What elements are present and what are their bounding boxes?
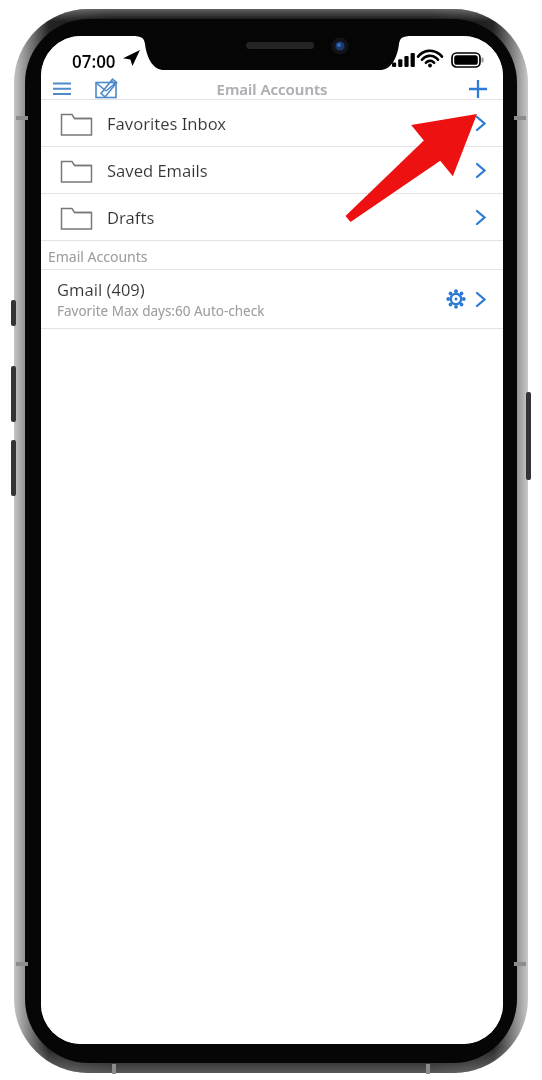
staticText: Drafts xyxy=(107,206,155,228)
staticText: Saved Emails xyxy=(107,159,208,181)
staticText: 07:00 xyxy=(72,50,116,73)
staticText: Favorites Inbox xyxy=(107,112,227,134)
button[interactable]: Drafts xyxy=(41,194,503,240)
button[interactable]: Compose xyxy=(93,76,123,97)
staticText: Email Accounts xyxy=(48,247,148,266)
staticText: Email Accounts xyxy=(41,79,503,99)
button[interactable]: Saved Emails xyxy=(41,147,503,193)
button[interactable]: Menu xyxy=(50,78,78,99)
staticText: Gmail (409) xyxy=(57,278,145,300)
button[interactable]: Favorites Inbox xyxy=(41,100,503,146)
button[interactable]: Add account xyxy=(466,77,490,98)
button[interactable]: Gmail (409) xyxy=(41,270,503,328)
button[interactable]: Account settings xyxy=(443,286,469,312)
staticText: Favorite Max days:60 Auto-check xyxy=(57,302,265,320)
